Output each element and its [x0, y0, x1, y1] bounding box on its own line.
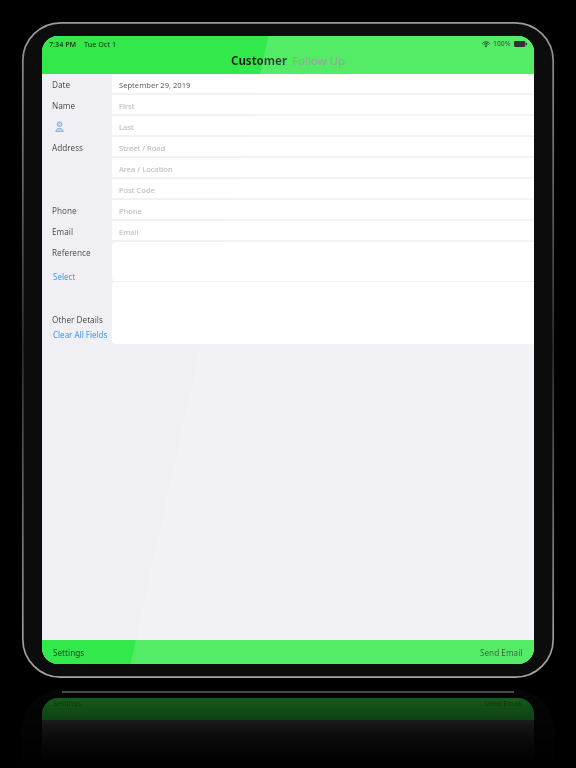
- staticText: Last: [119, 122, 134, 132]
- button[interactable]: Send Email: [469, 642, 534, 663]
- staticText: Address: [52, 142, 83, 153]
- staticText: Date: [52, 79, 71, 90]
- staticText: Select: [53, 271, 76, 281]
- button[interactable]: Street / Road: [112, 137, 534, 158]
- staticText: Clear All Fields: [53, 329, 108, 340]
- staticText: Email: [119, 227, 139, 237]
- staticText: Send Email: [480, 647, 523, 658]
- other: Choose contact: [54, 121, 65, 132]
- button[interactable]: Clear All Fields: [52, 328, 109, 341]
- staticText: Email: [52, 226, 74, 237]
- staticText: Phone: [52, 205, 77, 216]
- staticText: Name: [52, 100, 76, 111]
- staticText: Send Email: [484, 698, 523, 707]
- staticText: Reference: [52, 247, 91, 258]
- button[interactable]: Area / Location: [112, 158, 534, 179]
- staticText: Area / Location: [119, 164, 173, 174]
- staticText: Other Details: [52, 314, 103, 325]
- staticText: Post Code: [119, 185, 155, 195]
- staticText: Street / Road: [119, 143, 166, 153]
- staticText: September 29, 2019: [119, 80, 191, 90]
- other: Battery: [514, 41, 527, 47]
- staticText: Tue Oct 1: [84, 39, 117, 49]
- button[interactable]: First: [112, 95, 534, 116]
- button[interactable]: Settings: [42, 642, 96, 663]
- staticText: Customer: [231, 53, 288, 69]
- button[interactable]: September 29, 2019: [112, 74, 534, 95]
- button[interactable]: Phone: [112, 200, 534, 221]
- button[interactable]: Post Code: [112, 179, 534, 200]
- staticText: First: [119, 101, 135, 111]
- other: Wi-Fi: [482, 40, 490, 47]
- staticText: 7:34 PM: [49, 39, 77, 49]
- button[interactable]: Last: [112, 116, 534, 137]
- staticText: 100%: [493, 39, 511, 48]
- button[interactable]: Email: [112, 221, 534, 242]
- staticText: Phone: [119, 206, 142, 216]
- staticText: Settings: [53, 647, 85, 658]
- button[interactable]: Select: [52, 270, 77, 282]
- staticText: Follow Up: [292, 53, 346, 69]
- staticText: Settings: [53, 698, 82, 707]
